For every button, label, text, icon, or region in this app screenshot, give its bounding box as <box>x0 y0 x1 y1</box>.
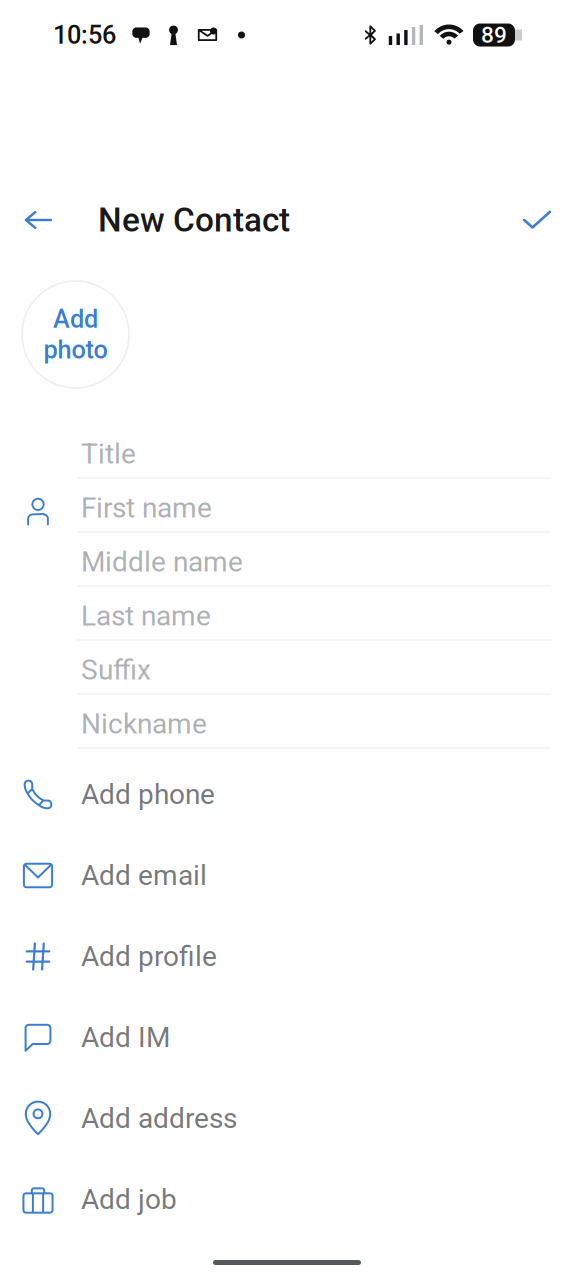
button[interactable]: Add email <box>0 835 574 916</box>
button[interactable]: Add job <box>0 1159 574 1240</box>
staticText: Add <box>53 304 98 334</box>
button[interactable]: Add photo <box>22 281 129 388</box>
button[interactable]: Last name <box>0 587 574 641</box>
button[interactable]: Add address <box>0 1078 574 1159</box>
staticText: 10:56 <box>53 20 116 50</box>
staticText: Add address <box>81 1102 237 1135</box>
staticText: Add phone <box>81 778 215 811</box>
staticText: Add job <box>81 1183 177 1216</box>
staticText: Add profile <box>81 940 217 973</box>
button[interactable]: Middle name <box>0 533 574 587</box>
staticText: Add email <box>81 859 207 892</box>
staticText: New Contact <box>98 200 290 240</box>
staticText: photo <box>43 335 107 365</box>
staticText: Middle name <box>81 546 243 578</box>
button[interactable]: Suffix <box>0 641 574 695</box>
staticText: Nickname <box>81 708 207 740</box>
staticText: Add IM <box>81 1021 170 1054</box>
staticText: First name <box>81 492 212 524</box>
staticText: Last name <box>81 600 211 632</box>
button[interactable]: Add phone <box>0 754 574 835</box>
button[interactable]: Add IM <box>0 997 574 1078</box>
button[interactable]: Save contact <box>509 192 565 248</box>
button[interactable]: Back <box>10 192 66 248</box>
staticText: 89 <box>481 22 507 48</box>
button[interactable]: Title <box>0 425 574 479</box>
button[interactable]: First name <box>0 479 574 533</box>
staticText: Suffix <box>81 654 151 686</box>
staticText: Title <box>81 438 136 470</box>
button[interactable]: Nickname <box>0 695 574 749</box>
button[interactable]: Add profile <box>0 916 574 997</box>
